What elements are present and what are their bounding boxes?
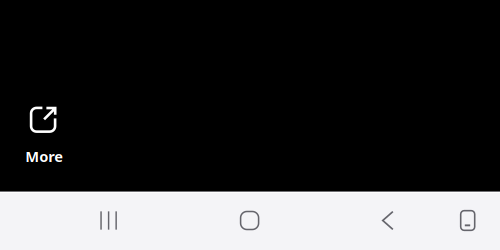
button[interactable]: Back xyxy=(338,191,438,250)
button[interactable]: Home xyxy=(195,191,305,250)
button[interactable]: Recents xyxy=(54,191,164,250)
staticText: More xyxy=(25,146,63,166)
button[interactable]: Hide keyboard xyxy=(440,191,496,250)
button[interactable]: More xyxy=(0,92,88,160)
